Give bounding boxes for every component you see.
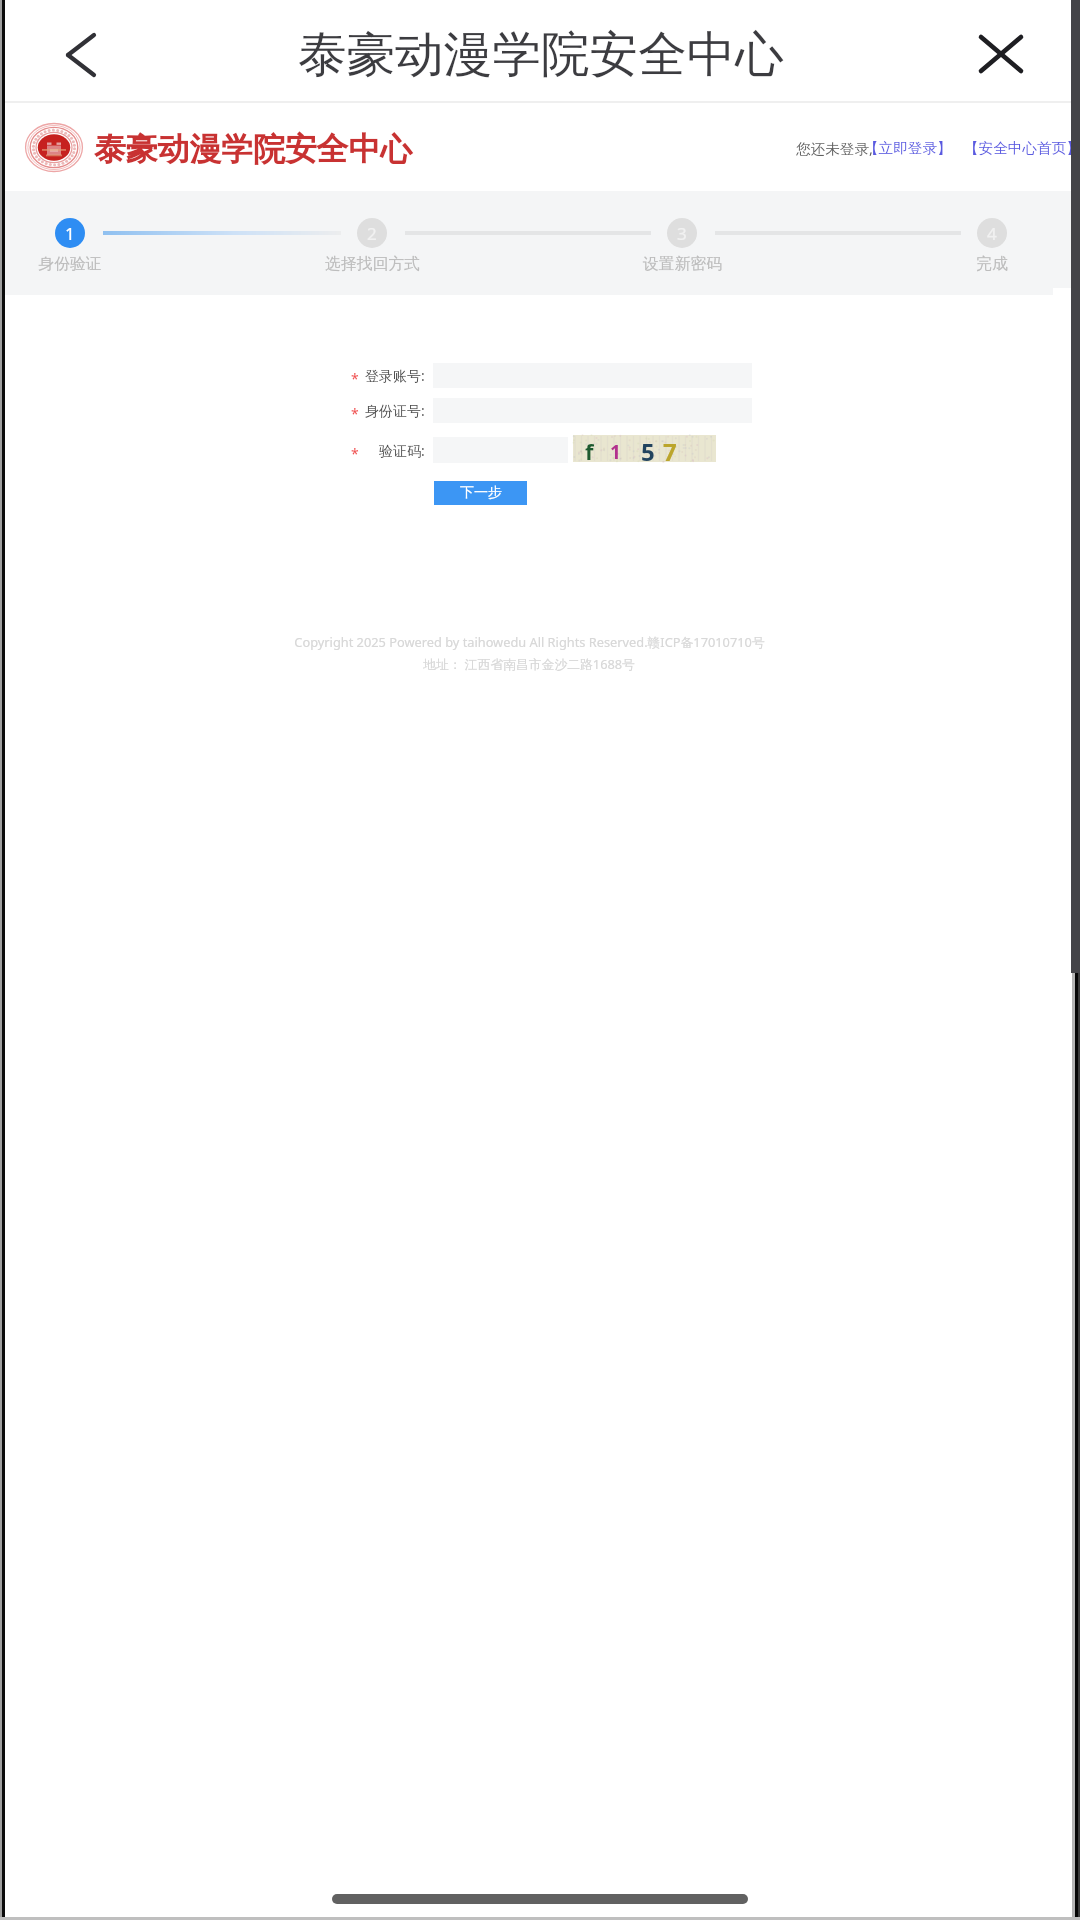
- staticText: 您还未登录,: [796, 138, 873, 158]
- staticText: 1: [610, 439, 621, 465]
- staticText: 选择找回方式: [325, 254, 420, 274]
- staticText: 1: [65, 222, 75, 245]
- staticText: Copyright 2025 Powered by taihowedu All …: [294, 633, 765, 650]
- button[interactable]: 换一张验证码: [573, 435, 716, 462]
- staticText: f: [585, 436, 594, 463]
- button[interactable]: 3: [582, 218, 782, 274]
- button[interactable]: 2: [272, 218, 472, 274]
- staticText: 身份证号:: [365, 401, 425, 420]
- staticText: 4: [987, 222, 997, 245]
- button[interactable]: 【安全中心首页】: [964, 139, 1080, 157]
- staticText: 2: [367, 222, 377, 245]
- button[interactable]: Back: [38, 20, 102, 84]
- button[interactable]: 1: [0, 218, 170, 274]
- staticText: 【立即登录】: [864, 139, 952, 157]
- button[interactable]: 【立即登录】: [864, 139, 952, 157]
- staticText: 7: [663, 435, 677, 462]
- staticText: 身份验证: [38, 254, 102, 274]
- staticText: 泰豪动漫学院安全中心: [298, 24, 784, 85]
- button[interactable]: 4: [892, 218, 1080, 274]
- staticText: *: [351, 369, 359, 388]
- staticText: 5: [641, 435, 655, 462]
- button[interactable]: Close: [972, 25, 1030, 83]
- staticText: 【安全中心首页】: [964, 139, 1080, 157]
- button[interactable]: 下一步: [434, 481, 527, 505]
- staticText: 下一步: [460, 484, 502, 502]
- staticText: *: [351, 404, 359, 423]
- staticText: 完成: [976, 254, 1008, 274]
- staticText: 地址： 江西省南昌市金沙二路1688号: [423, 655, 635, 672]
- staticText: 登录账号:: [365, 366, 425, 385]
- staticText: 泰豪动漫学院安全中心: [94, 129, 412, 169]
- staticText: 3: [677, 222, 687, 245]
- staticText: 验证码:: [379, 441, 425, 460]
- staticText: 设置新密码: [643, 254, 722, 274]
- staticText: *: [351, 444, 359, 463]
